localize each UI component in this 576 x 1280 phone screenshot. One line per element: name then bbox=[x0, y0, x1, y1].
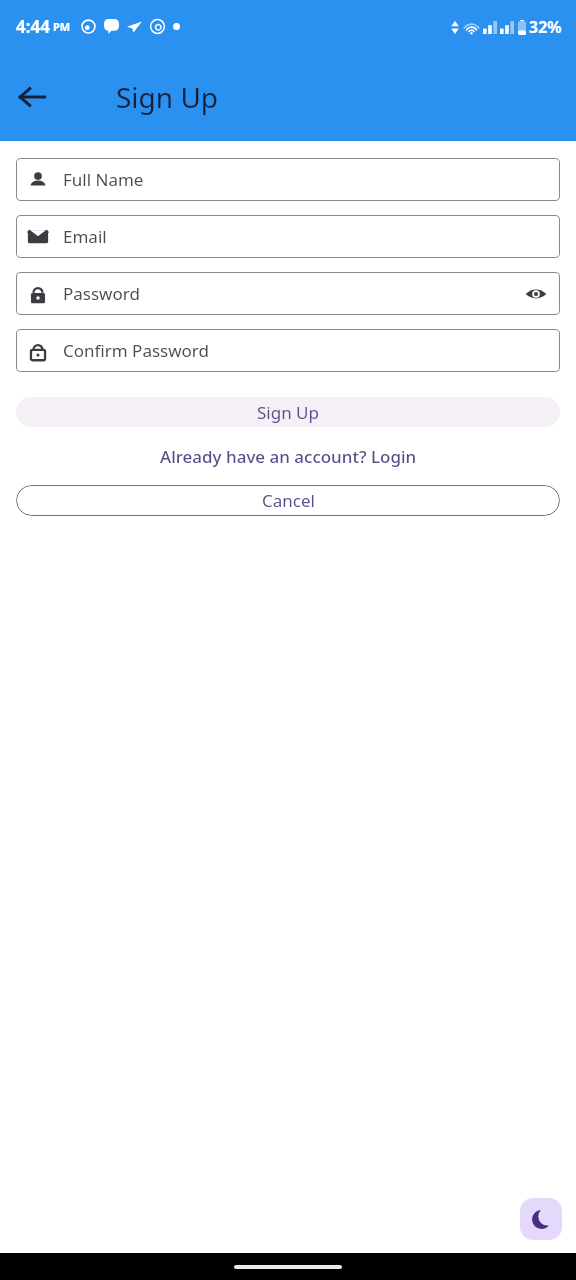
button[interactable]: Email bbox=[16, 215, 560, 258]
button[interactable]: Already have an account? Login bbox=[152, 441, 425, 472]
button[interactable]: Full Name bbox=[16, 158, 560, 201]
staticText: Sign Up bbox=[257, 401, 319, 424]
staticText: Full Name bbox=[63, 168, 549, 191]
staticText: Cancel bbox=[262, 489, 315, 512]
staticText: Email bbox=[63, 225, 549, 248]
staticText: Already have an account? Login bbox=[160, 445, 417, 468]
button[interactable]: Confirm Password bbox=[16, 329, 560, 372]
staticText: 4:44 bbox=[16, 15, 50, 38]
button[interactable]: Password bbox=[16, 272, 560, 315]
button[interactable]: Back bbox=[8, 73, 56, 121]
staticText: PM bbox=[53, 19, 71, 34]
staticText: 32% bbox=[529, 16, 562, 38]
staticText: Confirm Password bbox=[63, 339, 549, 362]
button[interactable]: Toggle dark mode bbox=[520, 1198, 562, 1240]
staticText: Sign Up bbox=[116, 78, 219, 116]
button[interactable]: Cancel bbox=[16, 485, 560, 516]
button[interactable]: Show password bbox=[516, 274, 556, 314]
button[interactable]: Sign Up bbox=[16, 397, 560, 427]
staticText: Password bbox=[63, 282, 516, 305]
